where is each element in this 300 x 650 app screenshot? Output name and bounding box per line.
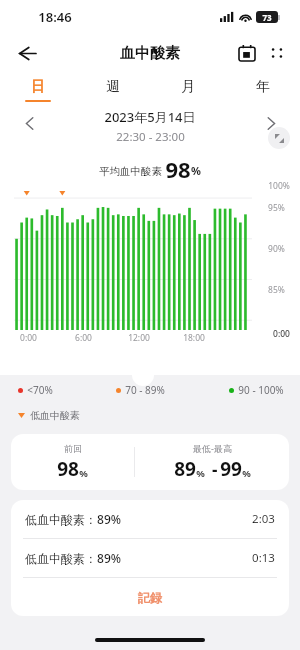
- staticText: 0:00: [20, 332, 37, 344]
- staticText: 年: [256, 78, 270, 96]
- staticText: 18:00: [183, 332, 205, 344]
- staticText: 12:00: [128, 332, 150, 344]
- staticText: 6:00: [75, 332, 92, 344]
- button[interactable]: Expand chart: [268, 127, 290, 149]
- staticText: -: [205, 458, 220, 481]
- button[interactable]: 年: [225, 72, 300, 108]
- staticText: 73: [262, 12, 272, 23]
- staticText: 0:00: [273, 328, 290, 340]
- staticText: 低血中酸素：89%: [25, 550, 121, 566]
- button[interactable]: More options: [262, 38, 292, 68]
- button[interactable]: 低血中酸素：89%: [25, 539, 275, 577]
- button[interactable]: Next day: [256, 108, 286, 138]
- staticText: %: [79, 467, 88, 480]
- staticText: 前回: [64, 443, 82, 454]
- staticText: 最低-最高: [193, 442, 232, 454]
- button[interactable]: 記録: [11, 578, 289, 616]
- staticText: 2:03: [252, 511, 275, 527]
- staticText: 70 - 89%: [125, 383, 165, 397]
- staticText: <70%: [27, 383, 53, 397]
- button[interactable]: 週: [75, 72, 150, 108]
- staticText: 2023年5月14日: [104, 108, 196, 126]
- staticText: %: [242, 467, 251, 480]
- staticText: %: [191, 163, 201, 178]
- staticText: 日: [31, 78, 45, 96]
- staticText: 0:13: [252, 550, 275, 566]
- staticText: 98: [57, 456, 79, 482]
- staticText: 98: [165, 154, 191, 180]
- button[interactable]: 前回: [11, 434, 289, 490]
- button[interactable]: Calendar: [232, 38, 262, 68]
- staticText: 22:30 - 23:00: [116, 129, 185, 145]
- button[interactable]: Drag handle: [132, 364, 154, 386]
- staticText: 99: [220, 456, 242, 482]
- staticText: 90%: [268, 243, 285, 255]
- staticText: 記録: [138, 590, 162, 605]
- staticText: 90 - 100%: [238, 383, 284, 397]
- staticText: 18:46: [38, 8, 72, 26]
- button[interactable]: 低血中酸素: [18, 404, 300, 426]
- staticText: 平均血中酸素: [99, 165, 162, 178]
- staticText: 月: [181, 78, 195, 96]
- staticText: 低血中酸素：89%: [25, 511, 121, 527]
- staticText: %: [196, 467, 205, 480]
- button[interactable]: 月: [150, 72, 225, 108]
- staticText: 血中酸素: [120, 44, 180, 63]
- staticText: 95%: [268, 202, 285, 214]
- staticText: 100%: [268, 180, 290, 192]
- staticText: 低血中酸素: [30, 409, 80, 422]
- button[interactable]: 低血中酸素：89%: [25, 500, 275, 538]
- button[interactable]: 日: [0, 72, 75, 108]
- staticText: 85%: [268, 284, 285, 296]
- button[interactable]: Previous day: [14, 108, 44, 138]
- staticText: 89: [174, 456, 196, 482]
- staticText: 週: [106, 78, 120, 96]
- button[interactable]: Back: [8, 35, 44, 71]
